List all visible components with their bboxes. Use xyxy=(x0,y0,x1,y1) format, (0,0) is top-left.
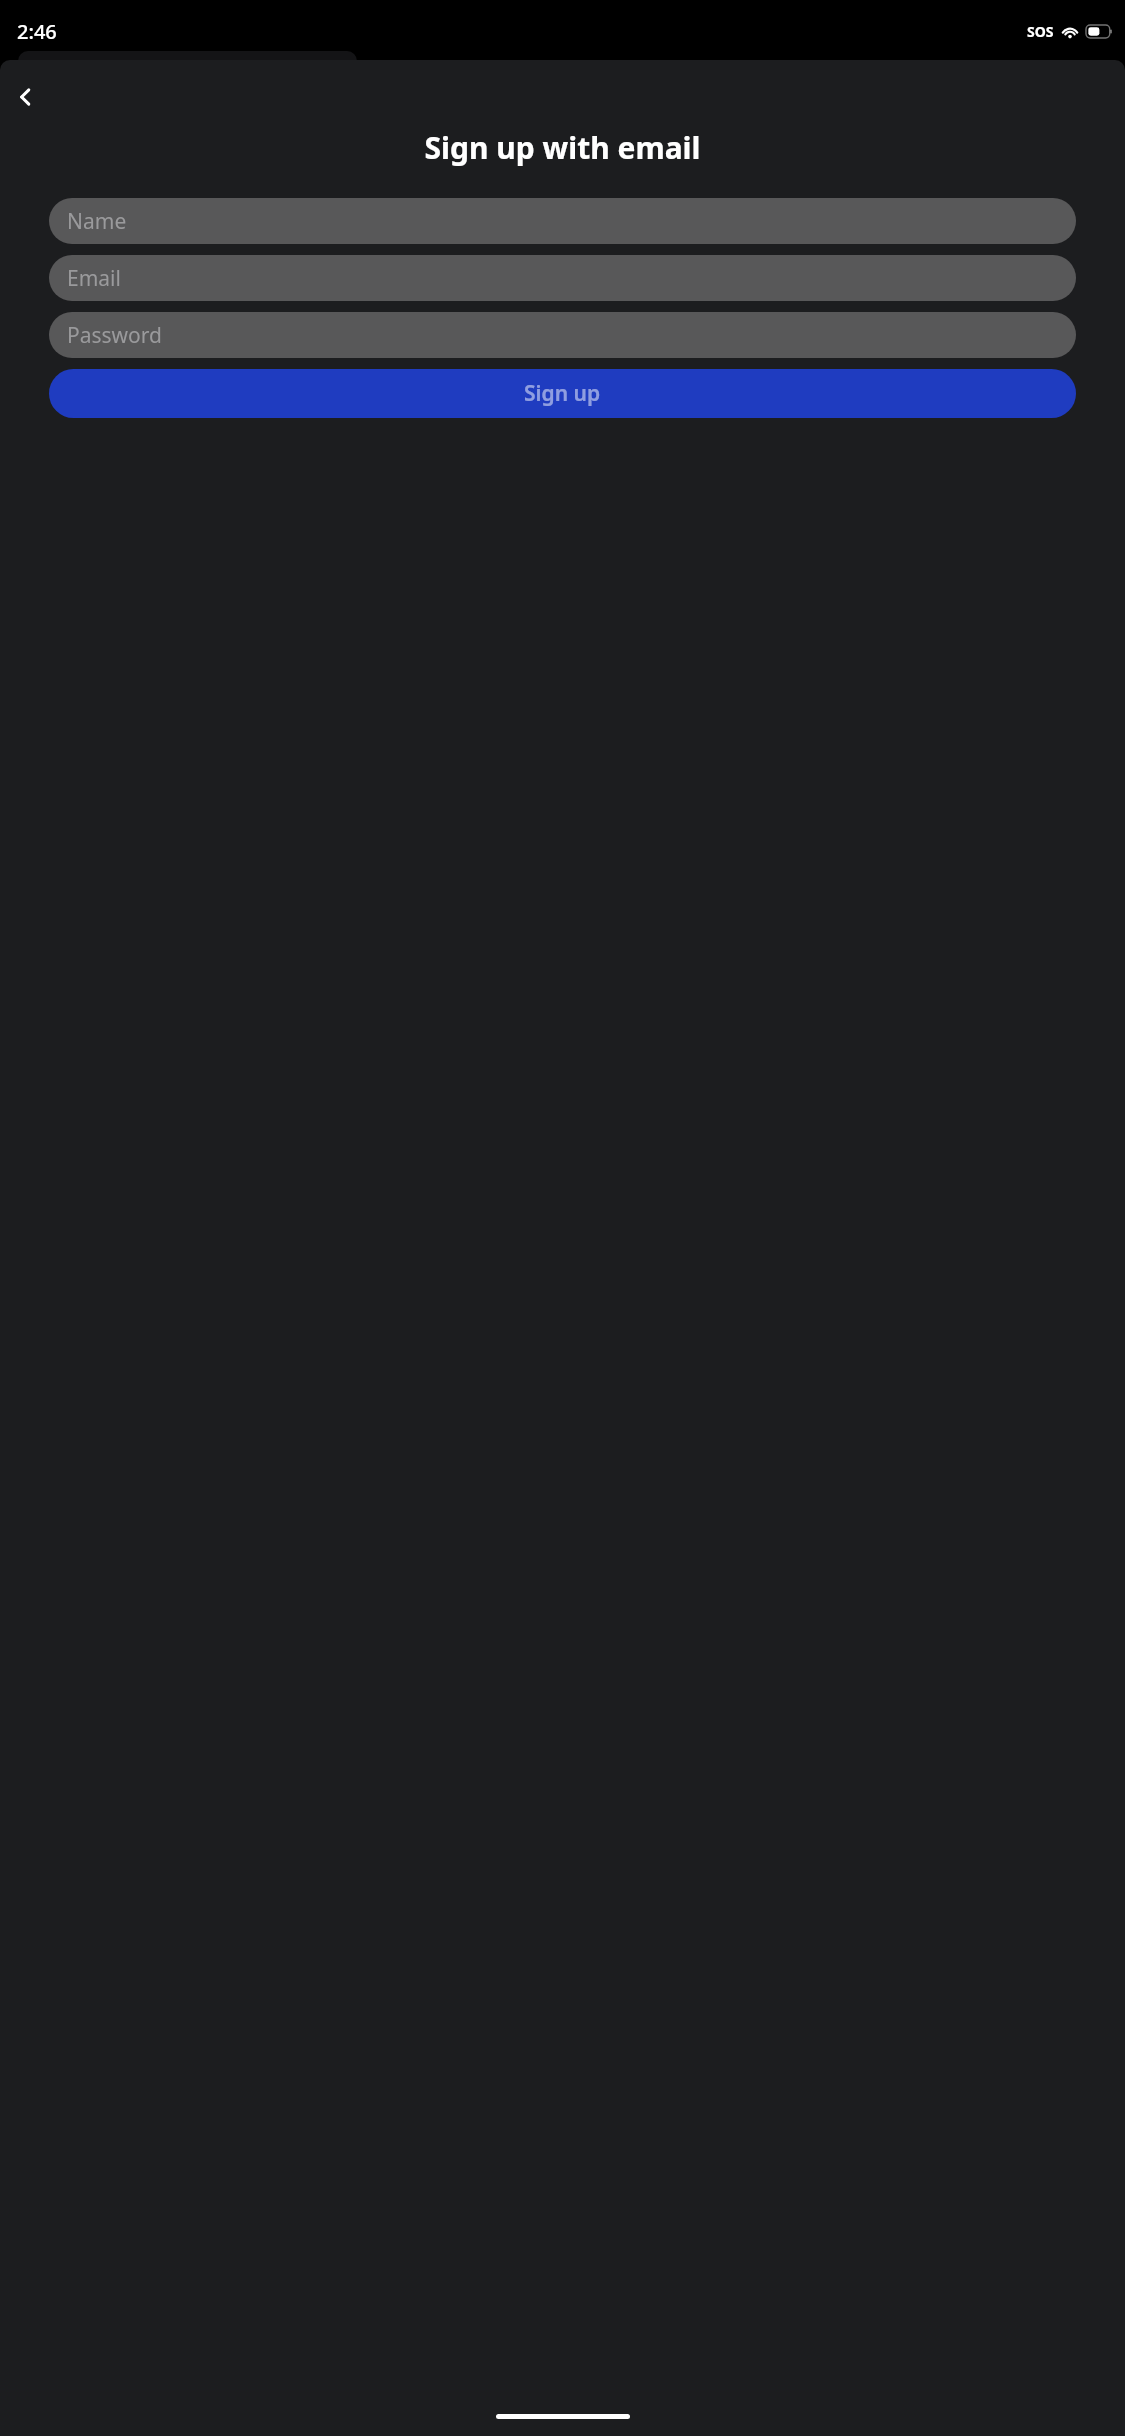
staticText: Password xyxy=(67,321,162,350)
staticText: Name xyxy=(67,207,127,236)
button[interactable]: Sign up xyxy=(49,369,1076,418)
staticText: Sign up xyxy=(524,379,601,408)
staticText: SOS xyxy=(1027,22,1054,41)
button[interactable]: Name xyxy=(49,198,1076,244)
staticText: Email xyxy=(67,264,121,293)
staticText: 2:46 xyxy=(17,18,57,45)
staticText: Sign up with email xyxy=(0,127,1125,168)
button[interactable]: Back xyxy=(0,73,48,121)
button[interactable]: Password xyxy=(49,312,1076,358)
button[interactable]: Email xyxy=(49,255,1076,301)
